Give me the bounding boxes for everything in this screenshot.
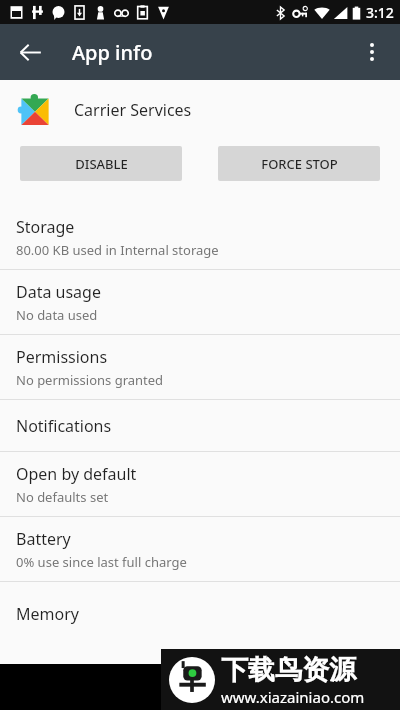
button[interactable]: Battery — [0, 517, 400, 581]
button[interactable]: Permissions — [0, 335, 400, 399]
staticText: Battery — [16, 528, 71, 550]
button[interactable]: Back — [176, 664, 224, 710]
staticText: Data usage — [16, 281, 101, 303]
button[interactable]: Navigate up — [6, 28, 54, 76]
staticText: www.xiazainiao.com — [221, 687, 365, 707]
button[interactable]: FORCE STOP — [218, 146, 380, 181]
staticText: App info — [72, 39, 153, 66]
button[interactable]: More options — [348, 28, 396, 76]
staticText: FORCE STOP — [261, 155, 338, 173]
button[interactable]: Storage — [0, 205, 400, 269]
staticText: 3:12 — [366, 3, 394, 22]
button[interactable]: Notifications — [0, 400, 400, 451]
button[interactable]: DISABLE — [20, 146, 182, 181]
button[interactable]: Data usage — [0, 270, 400, 334]
button[interactable]: Open by default — [0, 452, 400, 516]
button[interactable]: Memory — [0, 582, 400, 646]
staticText: Notifications — [16, 415, 112, 437]
staticText: Open by default — [16, 463, 137, 485]
staticText: No permissions granted — [16, 371, 164, 389]
staticText: Carrier Services — [74, 99, 192, 121]
staticText: No defaults set — [16, 488, 109, 506]
staticText: 0% use since last full charge — [16, 553, 187, 571]
staticText: 下载鸟资源 — [221, 653, 356, 687]
staticText: Permissions — [16, 346, 108, 368]
staticText: 80.00 KB used in Internal storage — [16, 241, 219, 259]
staticText: Memory — [16, 603, 79, 625]
staticText: No data used — [16, 306, 98, 324]
staticText: Storage — [16, 216, 75, 238]
staticText: DISABLE — [75, 155, 128, 173]
